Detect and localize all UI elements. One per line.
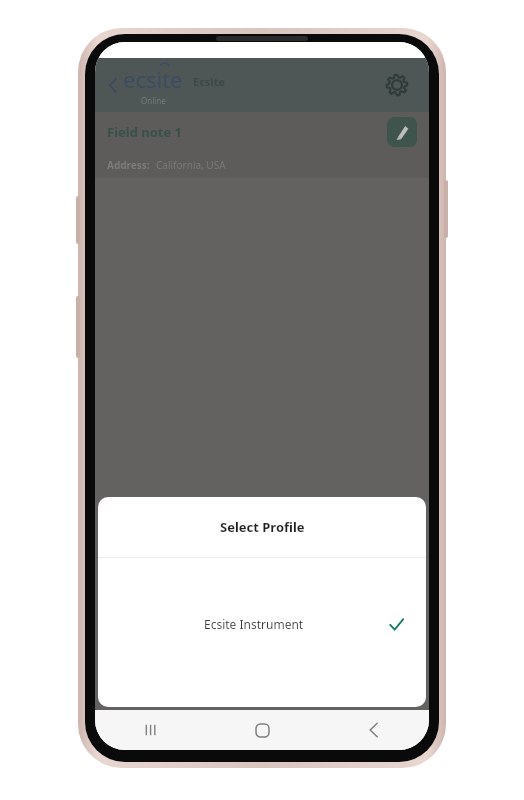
staticText: Field note 1 xyxy=(107,123,183,141)
staticText: California, USA xyxy=(156,158,226,172)
button[interactable]: Edit xyxy=(387,117,417,147)
staticText: ecsite xyxy=(123,64,183,94)
button[interactable]: Recents xyxy=(95,710,207,750)
button[interactable]: Home xyxy=(207,710,318,750)
staticText: Select Profile xyxy=(220,518,305,536)
staticText: Online xyxy=(141,95,166,106)
button[interactable]: Settings xyxy=(379,67,415,103)
staticText: Ecsite Instrument xyxy=(204,616,304,632)
button[interactable]: Back xyxy=(318,710,429,750)
button[interactable]: Ecsite Instrument xyxy=(98,600,426,648)
button[interactable]: Back xyxy=(105,70,121,100)
staticText: Ecsite xyxy=(193,74,225,89)
staticText: Address: xyxy=(107,158,150,172)
